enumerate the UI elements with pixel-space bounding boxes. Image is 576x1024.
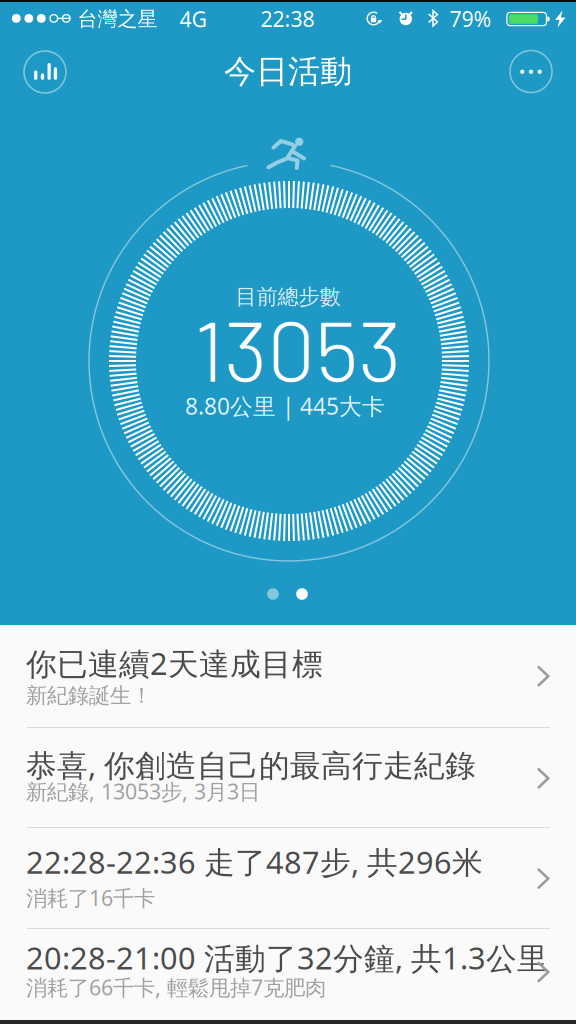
- staticText: 台灣之星: [78, 7, 158, 31]
- staticText: 今日活動: [224, 52, 352, 91]
- staticText: 20:28-21:00 活動了32分鐘, 共1.3公里: [26, 937, 548, 978]
- staticText: 22:38: [260, 5, 314, 33]
- staticText: 8.80公里 | 445大卡: [185, 391, 385, 421]
- staticText: 新紀錄, 13053步, 3月3日: [26, 777, 260, 805]
- button[interactable]: 你已連續2天達成目標: [0, 625, 576, 728]
- button[interactable]: 20:28-21:00 活動了32分鐘, 共1.3公里: [0, 929, 576, 1024]
- staticText: 消耗了66千卡, 輕鬆甩掉7克肥肉: [26, 973, 326, 1001]
- staticText: 13053: [194, 296, 401, 399]
- staticText: 22:28-22:36 走了487步, 共296米: [26, 841, 483, 882]
- button[interactable]: 恭喜, 你創造自己的最高行走紀錄: [0, 728, 576, 828]
- staticText: 4G: [179, 5, 207, 33]
- button[interactable]: 22:28-22:36 走了487步, 共296米: [0, 828, 576, 929]
- staticText: 你已連續2天達成目標: [26, 643, 323, 683]
- staticText: 79%: [449, 5, 491, 33]
- staticText: 新紀錄誕生！: [26, 682, 152, 709]
- staticText: 目前總步數: [235, 284, 340, 310]
- staticText: 恭喜, 你創造自己的最高行走紀錄: [26, 744, 476, 785]
- button[interactable]: 更多: [510, 50, 552, 92]
- button[interactable]: 統計: [24, 51, 66, 93]
- staticText: 消耗了16千卡: [26, 884, 155, 912]
